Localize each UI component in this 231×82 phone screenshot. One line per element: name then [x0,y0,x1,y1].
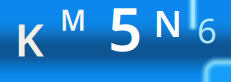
staticText: 6 [197,7,217,53]
staticText: 5 [108,0,142,68]
staticText: N [153,0,182,47]
staticText: M [60,1,86,39]
staticText: K [14,9,43,69]
